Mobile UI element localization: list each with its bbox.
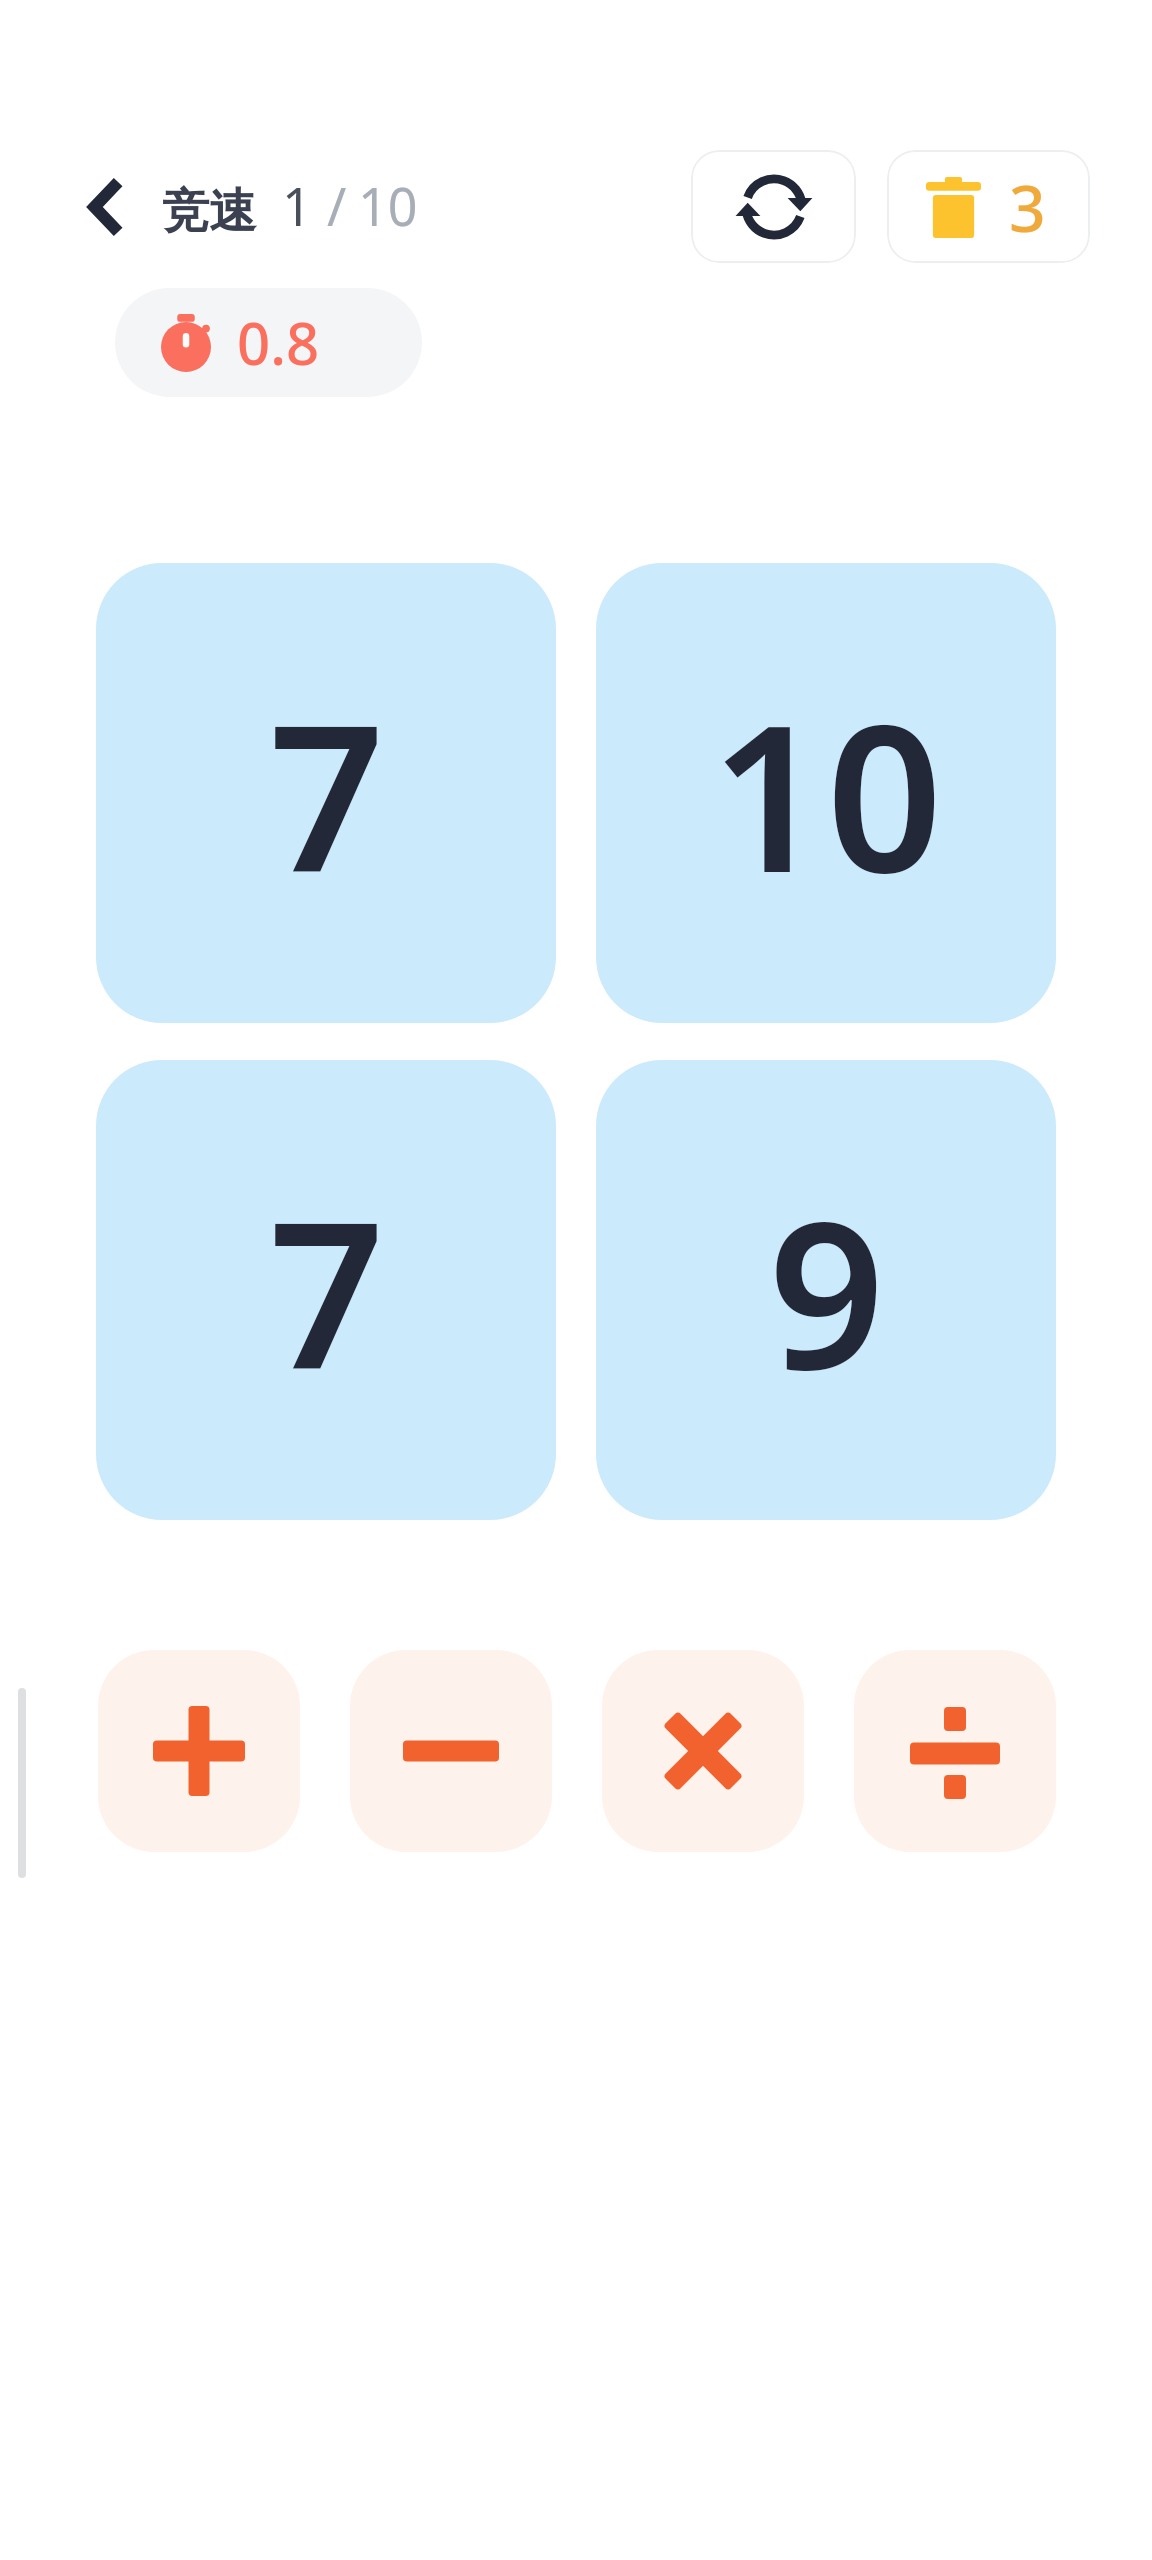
staticText: / xyxy=(327,170,347,241)
staticText: 10 xyxy=(358,170,418,241)
staticText: 竞速 xyxy=(162,182,256,241)
button[interactable]: 3 xyxy=(887,150,1090,263)
staticText: 3 xyxy=(1009,164,1046,251)
button[interactable]: Divide xyxy=(854,1650,1056,1852)
button[interactable]: Back xyxy=(48,152,158,262)
button[interactable]: 9 xyxy=(596,1060,1056,1520)
staticText: 0.8 xyxy=(237,303,320,382)
button[interactable]: 0.8 xyxy=(115,288,422,397)
button[interactable]: Plus xyxy=(98,1650,300,1852)
button[interactable]: 7 xyxy=(96,563,556,1023)
staticText: 1 xyxy=(282,170,312,241)
staticText: 7 xyxy=(268,1152,385,1428)
staticText: 7 xyxy=(268,655,385,931)
button[interactable]: Refresh xyxy=(691,150,856,263)
button[interactable]: 10 xyxy=(596,563,1056,1023)
staticText: 10 xyxy=(710,655,943,931)
button[interactable]: Minus xyxy=(350,1650,552,1852)
staticText: 9 xyxy=(768,1152,885,1428)
button[interactable]: 7 xyxy=(96,1060,556,1520)
button[interactable]: Multiply xyxy=(602,1650,804,1852)
